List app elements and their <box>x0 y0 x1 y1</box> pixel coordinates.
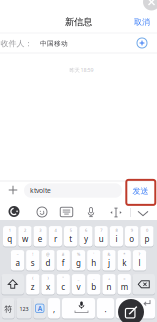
staticText: . <box>104 304 106 314</box>
staticText: 2 <box>24 228 26 233</box>
staticText: 新信息 <box>65 16 92 28</box>
staticText: t <box>69 233 72 244</box>
staticText: i <box>115 233 117 244</box>
button[interactable]: 2 <box>18 226 31 247</box>
staticText: 发送 <box>132 186 148 196</box>
staticText: ? <box>138 252 140 257</box>
staticText: n <box>106 281 111 292</box>
staticText: * <box>123 252 125 257</box>
staticText: p <box>144 233 149 244</box>
button[interactable]: Shift <box>1 274 24 295</box>
button[interactable]: 0 <box>140 226 153 247</box>
button[interactable]: ! <box>26 250 39 271</box>
staticText: e <box>38 233 43 244</box>
staticText: , <box>53 304 55 314</box>
button[interactable]: 4 <box>49 226 62 247</box>
button[interactable]: & <box>102 250 116 271</box>
button[interactable]: + <box>102 274 116 295</box>
staticText: j <box>108 257 110 268</box>
button[interactable]: 输入法菜单 <box>8 206 19 217</box>
button[interactable]: - <box>87 274 100 295</box>
staticText: % <box>77 252 80 257</box>
button[interactable]: 表情 <box>37 207 47 217</box>
button[interactable]: 5 <box>64 226 77 247</box>
button[interactable]: " <box>57 274 70 295</box>
button[interactable]: * <box>118 250 131 271</box>
button[interactable]: 短信输入框 <box>24 183 122 198</box>
staticText: ! <box>32 252 33 257</box>
staticText: 5 <box>70 228 72 233</box>
button[interactable]: 取消 <box>134 17 150 27</box>
staticText: v <box>76 281 80 292</box>
button[interactable]: ' <box>87 250 100 271</box>
button[interactable]: 6 <box>79 226 92 247</box>
staticText: m <box>121 281 128 292</box>
staticText: r <box>54 233 57 244</box>
staticText: z <box>31 281 35 292</box>
staticText: h <box>91 257 96 268</box>
button[interactable]: 3 <box>33 226 47 247</box>
button[interactable]: . <box>97 298 114 319</box>
staticText: o <box>129 233 134 244</box>
staticText: d <box>45 257 50 268</box>
button[interactable]: 123 <box>16 298 31 319</box>
button[interactable]: % <box>72 250 85 271</box>
button[interactable]: 添加联系人 <box>137 38 147 48</box>
button[interactable]: 发送 <box>132 186 148 196</box>
staticText: " <box>62 276 64 281</box>
staticText: 123 <box>19 305 28 313</box>
staticText: 取消 <box>134 17 150 27</box>
button[interactable]: 空格 <box>62 298 95 319</box>
staticText: 6 <box>85 228 87 233</box>
staticText: ktvolte <box>30 186 51 195</box>
button[interactable]: 语音输入 <box>86 207 95 217</box>
staticText: = <box>123 276 125 281</box>
button[interactable]: ? <box>133 250 146 271</box>
staticText: l <box>138 257 140 268</box>
staticText: w <box>22 233 28 244</box>
button[interactable]: 悬浮窗 <box>118 299 144 322</box>
button[interactable]: 9 <box>125 226 138 247</box>
staticText: 昨天 18:59 <box>69 66 93 74</box>
staticText: # <box>62 252 65 257</box>
button[interactable]: 删除 <box>132 274 155 295</box>
staticText: 4 <box>54 228 56 233</box>
button[interactable]: = <box>118 274 131 295</box>
button[interactable]: 移动光标 <box>110 207 122 217</box>
staticText: q <box>7 233 12 244</box>
staticText: 1 <box>9 228 11 233</box>
button[interactable]: 添加附件 <box>9 186 17 194</box>
staticText: u <box>99 233 104 244</box>
staticText: s <box>31 257 35 268</box>
staticText: c <box>61 281 65 292</box>
staticText: 8 <box>115 228 117 233</box>
button[interactable]: 换行 <box>116 298 155 319</box>
staticText: b <box>91 281 96 292</box>
staticText: ( <box>32 276 33 281</box>
staticText: 7 <box>100 228 102 233</box>
button[interactable]: 7 <box>94 226 108 247</box>
button[interactable]: 1 <box>3 226 16 247</box>
button[interactable]: _ <box>72 274 85 295</box>
button[interactable]: ~ <box>11 250 24 271</box>
staticText: 3 <box>39 228 41 233</box>
staticText: 中国移动 <box>40 39 68 48</box>
staticText: @ <box>46 252 50 257</box>
button[interactable]: 收起键盘 <box>137 211 148 216</box>
button[interactable]: , <box>48 298 60 319</box>
staticText: g <box>76 257 81 268</box>
button[interactable]: 8 <box>110 226 123 247</box>
button[interactable]: @ <box>41 250 55 271</box>
staticText: y <box>84 233 88 244</box>
button[interactable]: ( <box>26 274 39 295</box>
staticText: ~ <box>16 252 18 257</box>
staticText: A <box>38 304 42 313</box>
button[interactable]: ) <box>41 274 55 295</box>
button[interactable]: # <box>57 250 70 271</box>
staticText: _ <box>77 276 79 281</box>
button[interactable]: 键盘布局 <box>60 207 73 217</box>
button[interactable]: 符 <box>2 298 14 319</box>
staticText: & <box>107 252 110 257</box>
staticText: ' <box>93 252 94 257</box>
button[interactable]: 中英切换 <box>33 298 46 319</box>
